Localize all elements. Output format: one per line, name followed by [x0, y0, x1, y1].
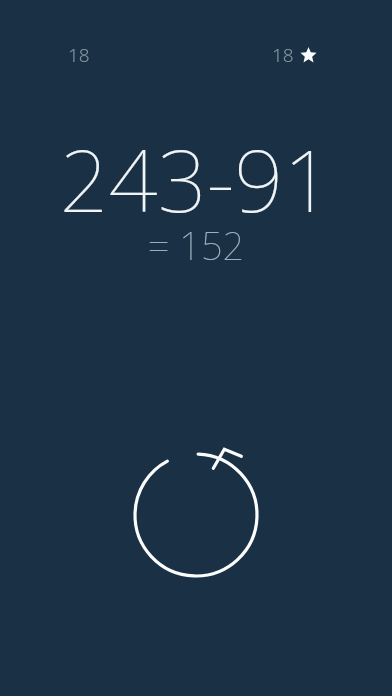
button[interactable]: Refresh question [126, 445, 266, 585]
staticText: 243-91 [0, 120, 392, 696]
staticText: 18 [68, 42, 90, 68]
staticText: 18 [272, 42, 294, 68]
button[interactable]: 18 [264, 38, 325, 72]
button[interactable]: 18 [60, 38, 98, 72]
staticText: = 152 [0, 219, 392, 696]
